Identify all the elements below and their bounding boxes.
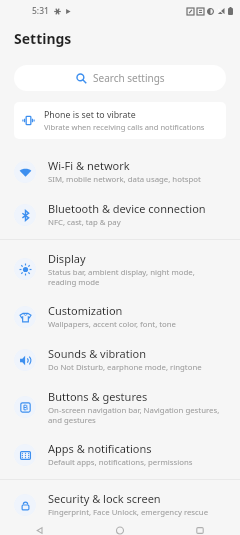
button[interactable]: Security & lock screen xyxy=(0,483,240,526)
button[interactable]: Apps & notifications xyxy=(0,433,240,476)
staticText: On-screen navigation bar, Navigation ges… xyxy=(48,405,224,425)
staticText: Do Not Disturb, earphone mode, ringtone xyxy=(48,362,202,373)
button[interactable]: Phone is set to vibrate xyxy=(14,102,226,139)
button[interactable]: Buttons & gestures xyxy=(0,381,240,433)
staticText: Wi-Fi & network xyxy=(48,158,130,173)
staticText: Sounds & vibration xyxy=(48,346,147,361)
button[interactable]: Bluetooth & device connection xyxy=(0,193,240,236)
staticText: Vibrate when receiving calls and notific… xyxy=(44,122,205,132)
button[interactable]: Display xyxy=(0,243,240,295)
staticText: Default apps, notifications, permissions xyxy=(48,457,193,468)
staticText: 5:31 xyxy=(32,5,49,17)
staticText: Customization xyxy=(48,303,123,318)
staticText: NFC, cast, tap & pay xyxy=(48,217,121,228)
staticText: Search settings xyxy=(93,71,165,85)
staticText: Buttons & gestures xyxy=(48,389,148,404)
staticText: Apps & notifications xyxy=(48,441,152,456)
button[interactable]: Customization xyxy=(0,295,240,338)
button[interactable]: Back xyxy=(0,526,80,535)
staticText: Wallpapers, accent color, font, tone xyxy=(48,319,177,330)
staticText: Phone is set to vibrate xyxy=(44,109,136,121)
button[interactable]: Home xyxy=(80,526,160,535)
button[interactable]: Recent apps xyxy=(160,526,240,535)
staticText: Status bar, ambient display, night mode,… xyxy=(48,267,224,287)
staticText: Settings xyxy=(14,29,72,48)
button[interactable]: Search settings xyxy=(14,65,226,91)
staticText: SIM, mobile network, data usage, hotspot xyxy=(48,174,201,185)
button[interactable]: Sounds & vibration xyxy=(0,338,240,381)
staticText: Display xyxy=(48,251,86,266)
staticText: Fingerprint, Face Unlock, emergency resc… xyxy=(48,507,209,518)
button[interactable]: Wi-Fi & network xyxy=(0,150,240,193)
staticText: Security & lock screen xyxy=(48,491,161,506)
staticText: Bluetooth & device connection xyxy=(48,201,206,216)
